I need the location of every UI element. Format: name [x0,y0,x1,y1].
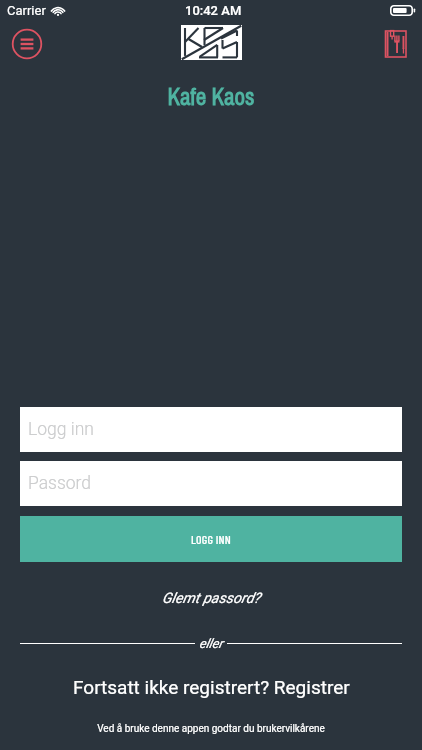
button[interactable]: Glemt passord? [154,586,269,611]
staticText: 10:42 AM [185,3,242,18]
staticText: Logg inn [28,419,94,440]
staticText: Kafe Kaos [0,81,422,112]
button[interactable]: LOGG INN [20,516,402,562]
button[interactable]: Passord [20,461,402,506]
button[interactable]: Fortsatt ikke registrert? Registrer [65,672,358,702]
staticText: Glemt passord? [162,590,261,607]
staticText: Passord [28,473,92,494]
button[interactable]: Logg inn [20,407,402,452]
staticText: eller [199,636,223,651]
button[interactable]: Open navigation menu [10,27,44,61]
staticText: Fortsatt ikke registrert? Registrer [73,676,350,698]
staticText: Ved å bruke denne appen godtar du bruker… [0,723,422,735]
staticText: LOGG INN [191,532,232,546]
button[interactable]: Menu [381,27,411,61]
staticText: Carrier [7,3,46,18]
